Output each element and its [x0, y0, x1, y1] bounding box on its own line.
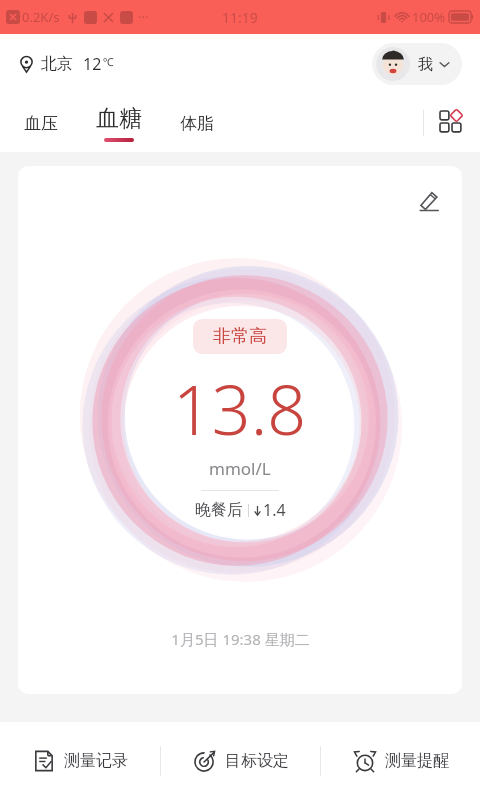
staticText: 1月5日 19:38 星期二 — [171, 629, 310, 649]
button[interactable]: 非常高 — [193, 319, 287, 354]
staticText: 测量记录 — [64, 751, 128, 771]
button[interactable]: 测量提醒 — [321, 722, 480, 800]
staticText: 体脂 — [180, 113, 214, 134]
button[interactable]: 体脂 — [174, 113, 220, 134]
button[interactable]: Edit — [410, 182, 448, 220]
button[interactable]: Location — [18, 53, 114, 75]
staticText: 11:19 — [222, 8, 258, 27]
staticText: 血糖 — [96, 104, 142, 133]
staticText: 1.4 — [263, 499, 286, 521]
staticText: 血压 — [24, 113, 58, 134]
button[interactable]: 我 — [372, 43, 462, 85]
button[interactable]: 血糖 — [90, 104, 148, 142]
staticText: mmol/L — [209, 457, 271, 480]
button[interactable]: 测量记录 — [0, 722, 160, 800]
staticText: 目标设定 — [225, 751, 289, 771]
staticText: 非常高 — [213, 325, 267, 348]
button[interactable]: 目标设定 — [161, 722, 320, 800]
staticText: 晚餐后 — [195, 500, 243, 520]
staticText: 我 — [418, 55, 433, 74]
staticText: 13.8 — [173, 362, 307, 455]
staticText: 0.2K/s — [22, 8, 60, 26]
staticText: 12 — [83, 53, 102, 75]
button[interactable]: More features — [424, 111, 480, 135]
staticText: 100% — [412, 8, 446, 26]
other: Location — [18, 56, 35, 73]
staticText: 北京 — [41, 54, 73, 74]
button[interactable]: 血压 — [18, 113, 64, 134]
staticText: ℃ — [103, 54, 114, 69]
staticText: ··· — [138, 8, 149, 26]
staticText: 测量提醒 — [385, 751, 449, 771]
